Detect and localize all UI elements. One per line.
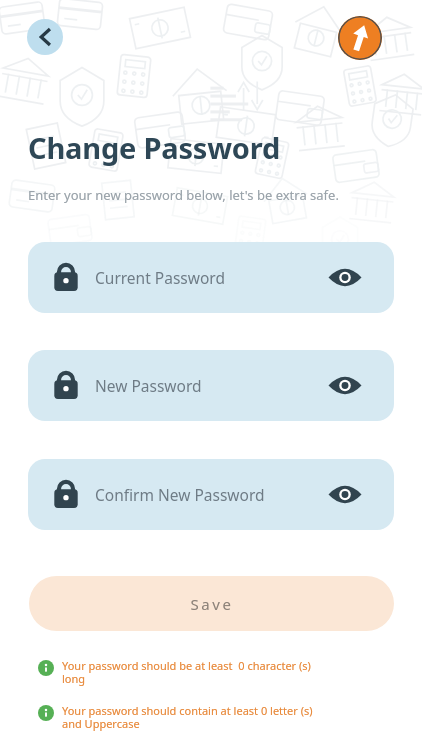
staticText: Confirm New Password	[95, 484, 265, 505]
button[interactable]: New Password	[28, 350, 394, 421]
staticText: Change Password	[28, 128, 281, 167]
button[interactable]: Send	[338, 16, 382, 60]
button[interactable]: Current Password	[28, 242, 394, 313]
staticText: Your password should be at least 0 chara…	[62, 658, 311, 686]
staticText: Enter your new password below, let's be …	[28, 186, 339, 204]
button[interactable]: Confirm New Password	[28, 459, 394, 530]
button[interactable]: Back	[27, 19, 63, 55]
staticText: Save	[190, 594, 234, 614]
staticText: Your password should contain at least 0 …	[62, 703, 313, 731]
staticText: New Password	[95, 375, 202, 396]
button[interactable]: Save	[29, 576, 394, 631]
staticText: Current Password	[95, 267, 225, 288]
